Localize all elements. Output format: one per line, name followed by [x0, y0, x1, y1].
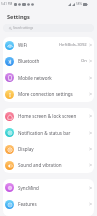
staticText: HeftBids-3092: [59, 42, 87, 48]
button[interactable]: Home screen & lock screen: [3, 108, 94, 124]
button[interactable]: Display: [3, 141, 94, 157]
button[interactable]: Mobile network: [3, 69, 94, 86]
staticText: Settings: [7, 13, 30, 21]
staticText: More connection settings: [18, 91, 89, 97]
button[interactable]: Search settings: [3, 24, 94, 32]
staticText: 58%: [76, 2, 82, 6]
staticText: Features: [18, 201, 89, 207]
button[interactable]: Sound and vibration: [3, 157, 94, 173]
staticText: Mobile network: [18, 75, 89, 81]
button[interactable]: SyncMind: [3, 179, 94, 196]
staticText: Home screen & lock screen: [18, 113, 89, 119]
button[interactable]: More connection settings: [3, 86, 94, 102]
staticText: Display: [18, 146, 89, 152]
staticText: Sound and vibration: [18, 162, 89, 168]
staticText: Search settings: [13, 26, 34, 30]
staticText: SyncMind: [18, 185, 89, 191]
staticText: Notification & status bar: [18, 130, 89, 136]
button[interactable]: Features: [3, 196, 94, 212]
staticText: On: [81, 58, 87, 64]
button[interactable]: WiFi: [3, 37, 94, 53]
staticText: 5:41 PM: [1, 2, 13, 6]
button[interactable]: Notification & status bar: [3, 124, 94, 141]
staticText: Bluetooth: [18, 58, 81, 64]
button[interactable]: Bluetooth: [3, 53, 94, 69]
staticText: WiFi: [18, 42, 59, 48]
